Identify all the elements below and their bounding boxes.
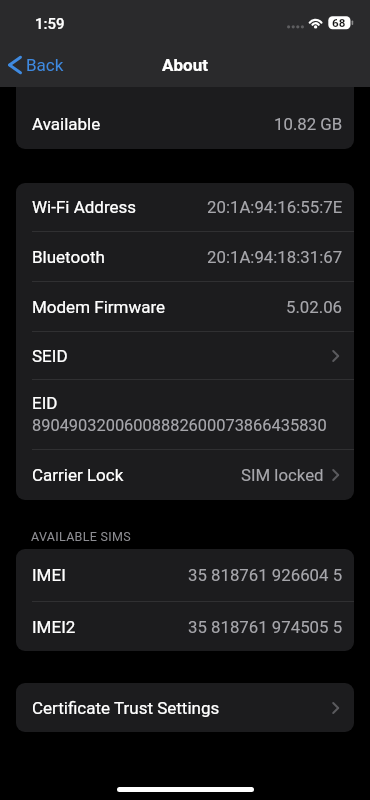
staticText: IMEI2 [32, 617, 76, 637]
staticText: Carrier Lock [32, 465, 124, 485]
button[interactable]: Bluetooth [16, 232, 354, 281]
staticText: Wi-Fi Address [32, 197, 137, 217]
staticText: 35 818761 974505 5 [188, 617, 343, 637]
button[interactable]: EID [16, 380, 354, 449]
staticText: 1:59 [35, 15, 65, 33]
button[interactable]: SEID [16, 332, 354, 379]
staticText: Available [32, 114, 101, 134]
button[interactable]: Available [16, 99, 354, 149]
staticText: SEID [32, 346, 68, 366]
staticText: Certificate Trust Settings [32, 698, 220, 718]
button[interactable]: IMEI [16, 549, 354, 601]
staticText: About [162, 55, 208, 75]
button[interactable]: Back [0, 50, 72, 80]
staticText: 68 [332, 16, 346, 30]
button[interactable]: Modem Firmware [16, 282, 354, 331]
button[interactable]: Wi-Fi Address [16, 183, 354, 231]
staticText: 10.82 GB [274, 114, 343, 134]
staticText: 35 818761 926604 5 [188, 565, 343, 585]
staticText: 89049032006008882600073866435830 [32, 416, 327, 435]
staticText: Back [26, 55, 64, 75]
staticText: Modem Firmware [32, 297, 166, 317]
button[interactable]: Carrier Lock [16, 450, 354, 500]
staticText: 5.02.06 [286, 297, 343, 317]
staticText: IMEI [32, 565, 66, 585]
staticText: 20:1A:94:18:31:67 [207, 247, 343, 267]
staticText: AVAILABLE SIMS [31, 529, 132, 544]
button[interactable]: Certificate Trust Settings [16, 683, 354, 732]
button[interactable]: IMEI2 [16, 602, 354, 651]
staticText: SIM locked [241, 465, 324, 485]
staticText: 20:1A:94:16:55:7E [207, 197, 343, 217]
staticText: Bluetooth [32, 247, 105, 267]
staticText: EID [32, 393, 58, 413]
